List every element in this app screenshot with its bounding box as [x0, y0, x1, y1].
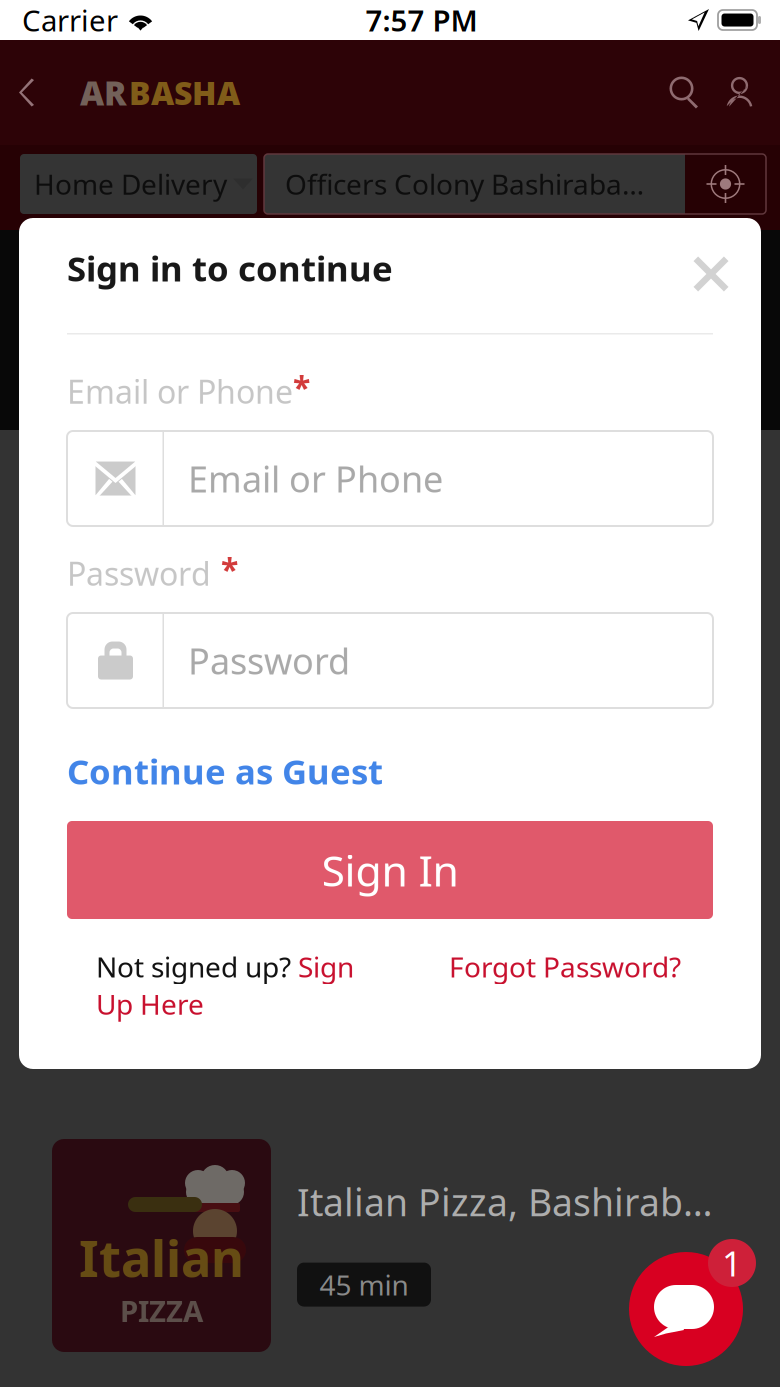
button[interactable]: Back — [5, 62, 49, 122]
staticText: AR — [80, 70, 127, 115]
button[interactable]: Continue as Guest — [67, 750, 383, 792]
button[interactable]: Search — [657, 64, 711, 120]
staticText: Email or Phone — [188, 455, 443, 502]
staticText: Email or Phone — [67, 370, 293, 412]
staticText: * — [221, 548, 238, 590]
button[interactable]: Sign In — [67, 821, 713, 919]
staticText: Continue as Guest — [67, 748, 383, 794]
staticText: 1 — [722, 1240, 742, 1286]
staticText: Forgot Password? — [449, 948, 681, 985]
staticText: Italian Pizza, Bashirab… — [297, 1177, 713, 1227]
staticText: Italian — [79, 1224, 244, 1291]
staticText: 7:57 PM — [365, 0, 477, 39]
button[interactable]: Account — [711, 64, 769, 120]
staticText: Password — [67, 552, 211, 594]
staticText: BASHA — [129, 71, 240, 114]
button[interactable]: Home Delivery — [20, 154, 257, 214]
button[interactable]: Up Here — [96, 985, 204, 1022]
button[interactable]: Sign — [298, 948, 354, 985]
button[interactable]: Use current location — [685, 154, 766, 214]
staticText: Not signed up? — [96, 948, 298, 985]
staticText: Sign — [298, 948, 354, 985]
staticText: Home Delivery — [34, 165, 227, 203]
staticText: Carrier — [22, 0, 118, 39]
staticText: Sign in to continue — [67, 245, 393, 291]
staticText: Up Here — [96, 985, 204, 1022]
button[interactable]: Forgot Password? — [449, 948, 681, 985]
staticText: Officers Colony Bashiraba… — [285, 165, 644, 203]
staticText: * — [293, 366, 310, 408]
button[interactable]: Chat — [629, 1252, 743, 1366]
staticText: PIZZA — [120, 1291, 203, 1330]
button[interactable]: Close — [685, 248, 737, 300]
staticText: Password — [188, 637, 350, 684]
staticText: Sign In — [321, 842, 458, 898]
staticText: 45 min — [319, 1266, 408, 1303]
